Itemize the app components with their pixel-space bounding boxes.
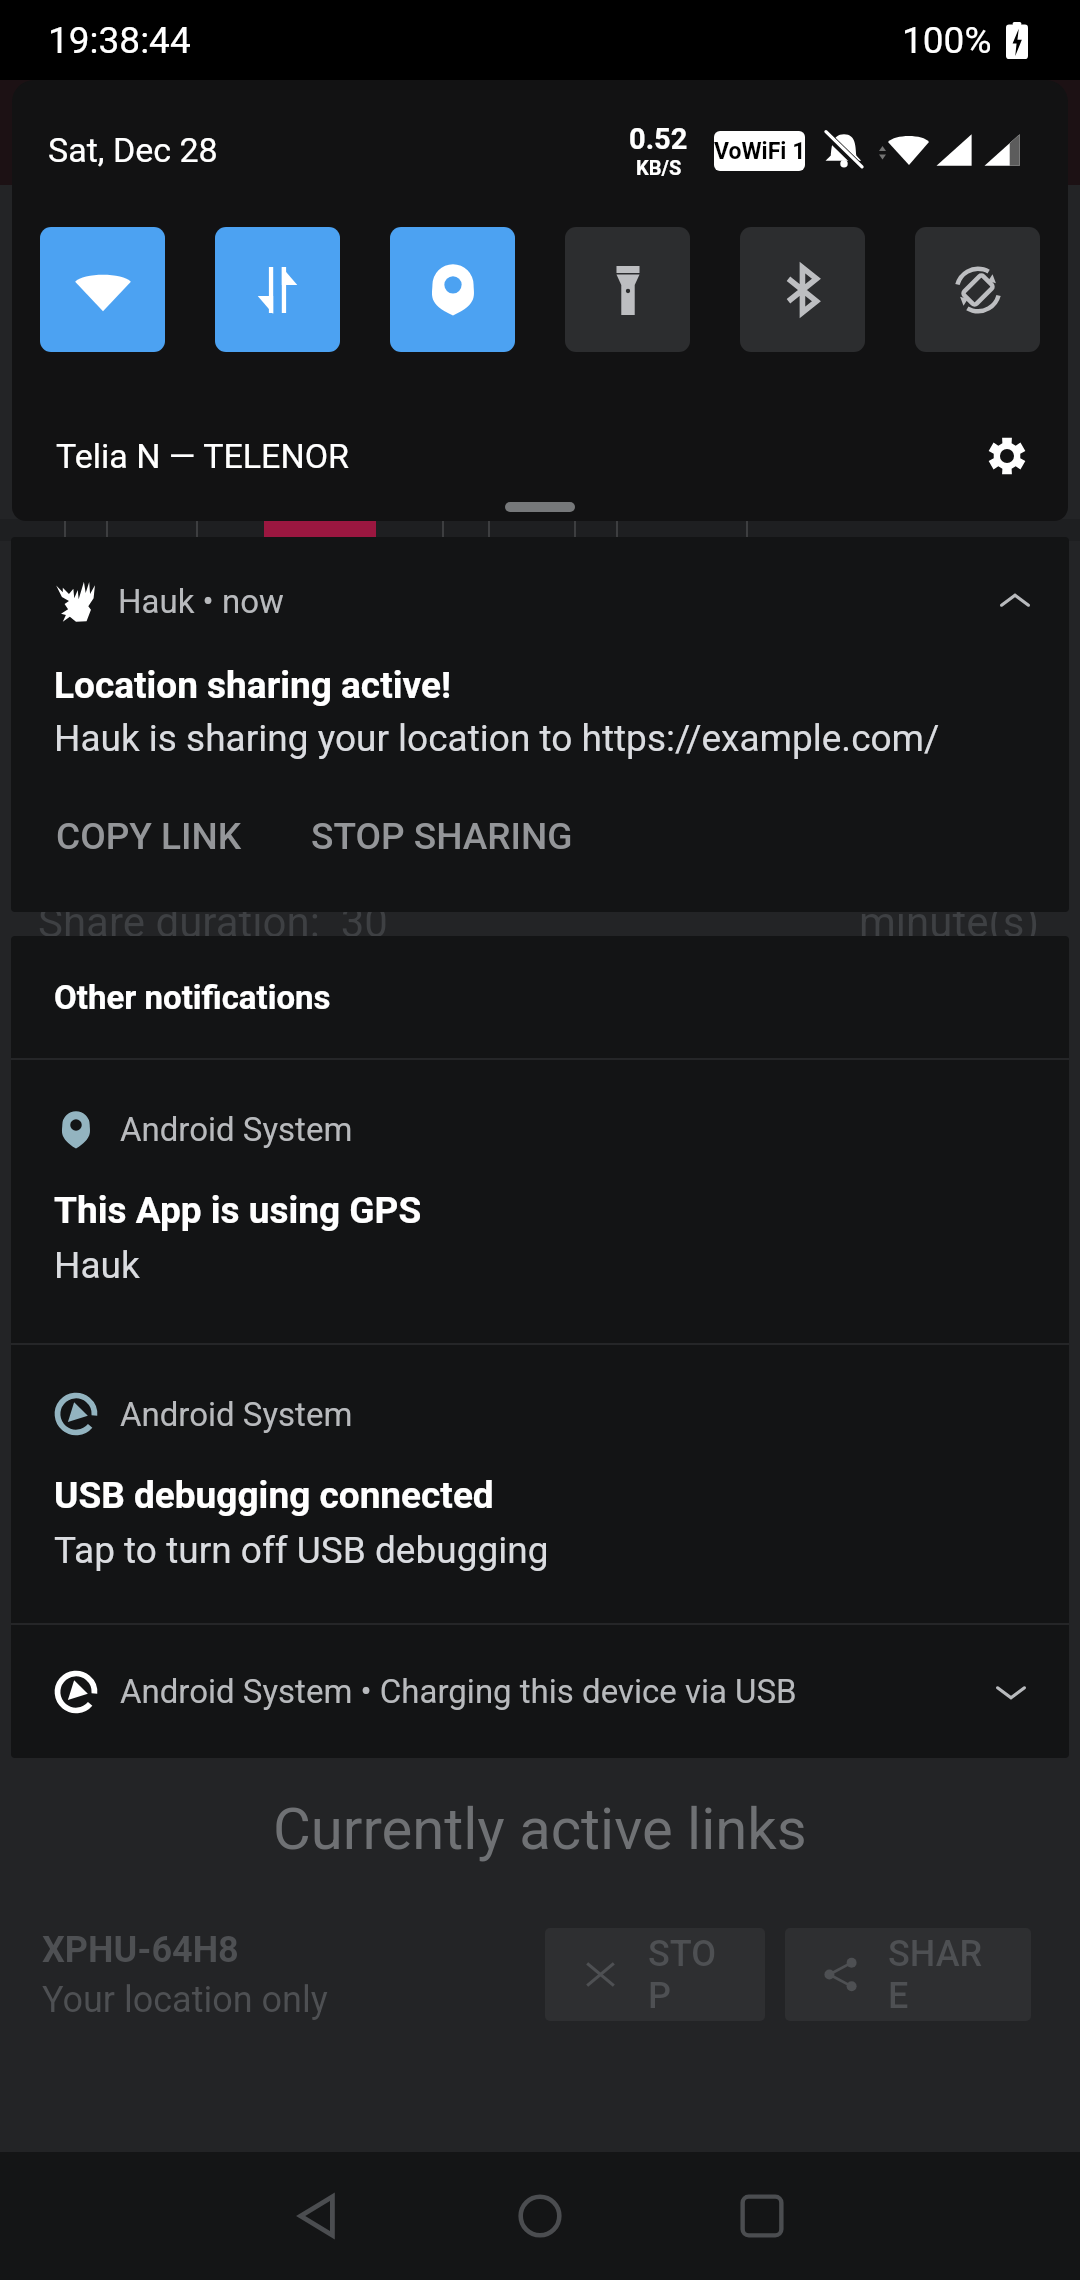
staticText: Tap to turn off USB debugging (54, 1529, 549, 1572)
staticText: USB debugging connected (54, 1474, 494, 1517)
button[interactable]: Recents (702, 2156, 822, 2276)
staticText: COPY LINK (56, 815, 242, 858)
staticText: STOP (648, 1933, 728, 2017)
button[interactable]: Mobile data (215, 227, 340, 352)
staticText: Android System (120, 1395, 353, 1434)
staticText: This App is using GPS (54, 1189, 422, 1232)
staticText: XPHU-64H8 (42, 1929, 239, 1971)
staticText: Hauk is sharing your location to https:/… (54, 717, 940, 760)
button[interactable]: Android System (11, 1060, 1069, 1343)
button[interactable]: Android System • Charging this device vi… (11, 1625, 1069, 1758)
button[interactable]: Home (480, 2156, 600, 2276)
staticText: Location sharing active! (54, 664, 451, 707)
button[interactable]: Back (258, 2156, 378, 2276)
button[interactable]: Collapse (987, 573, 1043, 629)
staticText: Share duration: 30 (38, 898, 388, 947)
staticText: Android System (120, 1110, 353, 1149)
staticText: Hauk (54, 1244, 140, 1287)
button[interactable]: Android System (11, 1345, 1069, 1623)
button[interactable]: Expand (983, 1664, 1039, 1720)
staticText: Android System • Charging this device vi… (120, 1672, 797, 1711)
button[interactable]: Location (390, 227, 515, 352)
staticText: 19:38:44 (48, 19, 191, 62)
staticText: 100% (902, 19, 992, 62)
button[interactable]: COPY LINK (54, 807, 244, 866)
button[interactable]: Auto-rotate (915, 227, 1040, 352)
staticText: Currently active links (273, 1795, 807, 1863)
button[interactable]: Settings (979, 428, 1035, 484)
button[interactable]: STOP SHARING (309, 807, 575, 866)
staticText: KB/S (636, 156, 682, 179)
button[interactable]: Wi-Fi (40, 227, 165, 352)
staticText: Sat, Dec 28 (48, 130, 218, 170)
staticText: minute(s) (859, 898, 1040, 947)
button[interactable]: Flashlight (565, 227, 690, 352)
button[interactable]: Hauk • now (11, 537, 1069, 912)
staticText: Telia N — TELENOR (56, 436, 349, 476)
staticText: Your location only (42, 1979, 328, 2021)
staticText: 0.52 (629, 122, 688, 156)
staticText: VoWiFi 1 (714, 138, 805, 165)
button[interactable]: Bluetooth (740, 227, 865, 352)
staticText: SHARE (888, 1933, 994, 2017)
staticText: Other notifications (54, 978, 331, 1017)
button[interactable]: SHARE (785, 1928, 1031, 2021)
staticText: STOP SHARING (311, 815, 573, 858)
staticText: Hauk • now (118, 582, 284, 621)
button[interactable]: STOP (545, 1928, 765, 2021)
